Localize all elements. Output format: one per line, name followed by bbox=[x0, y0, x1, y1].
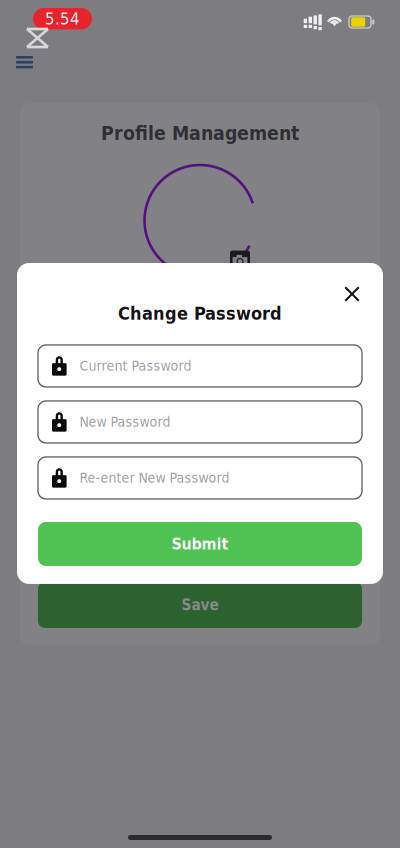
staticText: Current Password bbox=[80, 358, 192, 374]
staticText: 5.54 bbox=[45, 9, 80, 28]
button[interactable]: Menu bbox=[0, 0, 33, 68]
staticText: Profile Management bbox=[101, 122, 299, 144]
button[interactable]: Submit bbox=[38, 522, 362, 566]
staticText: Re-enter New Password bbox=[80, 470, 230, 486]
staticText: Save bbox=[181, 596, 218, 614]
button[interactable]: Save bbox=[38, 582, 362, 628]
staticText: Submit bbox=[171, 535, 228, 553]
staticText: Change Password bbox=[118, 303, 282, 324]
staticText: New Password bbox=[80, 414, 171, 430]
button[interactable]: Close bbox=[336, 279, 368, 309]
